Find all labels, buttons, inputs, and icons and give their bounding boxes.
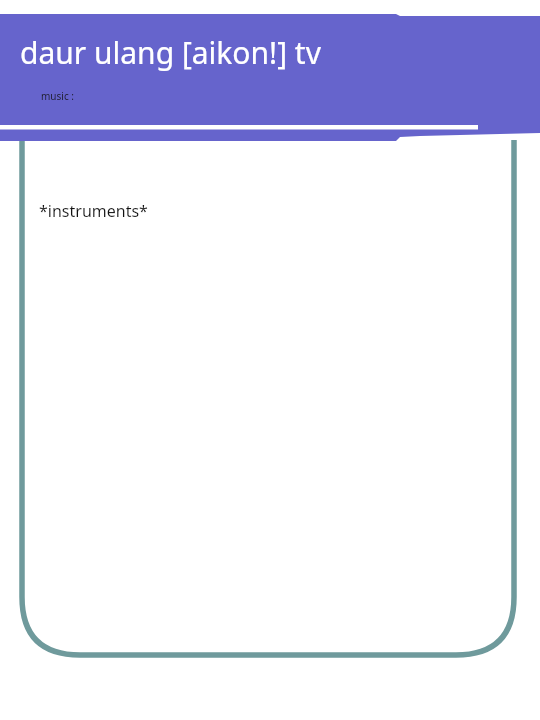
staticText: daur ulang [aikon!] tv (20, 32, 321, 73)
staticText: music : (41, 89, 74, 103)
button[interactable]: *instruments* (39, 200, 148, 222)
button[interactable]: daur ulang [aikon!] tv (20, 32, 321, 73)
staticText: *instruments* (39, 200, 148, 222)
button[interactable]: music : (41, 89, 74, 103)
